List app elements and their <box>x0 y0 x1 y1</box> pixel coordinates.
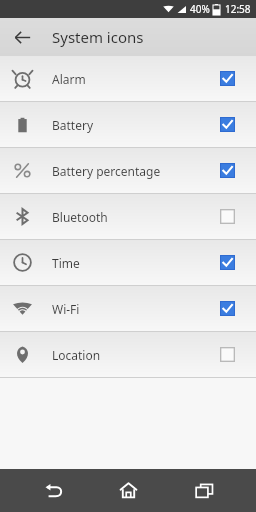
button[interactable]: Alarm <box>0 56 256 101</box>
button[interactable]: Location <box>0 332 256 377</box>
staticText: Alarm <box>52 71 86 87</box>
staticText: Location <box>52 347 101 363</box>
button[interactable]: Time <box>0 240 256 285</box>
staticText: Bluetooth <box>52 209 108 225</box>
staticText: System icons <box>52 27 144 47</box>
staticText: Wi-Fi <box>52 301 80 317</box>
button[interactable]: Battery percentage <box>0 148 256 193</box>
staticText: Battery <box>52 117 94 133</box>
button[interactable]: Wi-Fi <box>0 286 256 331</box>
button[interactable]: Recent apps <box>181 469 227 512</box>
button[interactable]: Battery <box>0 102 256 147</box>
staticText: Time <box>52 255 80 271</box>
button[interactable]: Back <box>6 21 38 53</box>
staticText: 40% <box>190 2 210 16</box>
staticText: Battery percentage <box>52 163 161 179</box>
button[interactable]: Bluetooth <box>0 194 256 239</box>
button[interactable]: Back <box>30 469 76 512</box>
staticText: 12:58 <box>225 2 251 16</box>
button[interactable]: Home <box>105 469 151 512</box>
